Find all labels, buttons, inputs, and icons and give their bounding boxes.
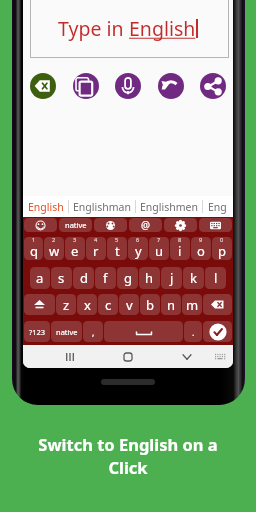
button[interactable]: q	[24, 237, 43, 260]
button[interactable]: o	[191, 237, 211, 260]
button[interactable]: x	[77, 294, 97, 315]
button[interactable]: b	[140, 294, 160, 315]
button[interactable]: g	[117, 267, 138, 289]
staticText: b	[146, 296, 154, 314]
button[interactable]: Englishman	[68, 196, 135, 217]
button[interactable]: .	[184, 321, 202, 342]
staticText: o	[197, 242, 205, 260]
button[interactable]: u	[149, 237, 169, 260]
button[interactable]: r	[86, 237, 106, 260]
staticText: s	[58, 269, 65, 287]
staticText: c	[105, 296, 112, 314]
staticText: k	[190, 269, 197, 287]
staticText: w	[49, 242, 60, 260]
button[interactable]: Keyboard layout	[199, 218, 232, 232]
button[interactable]: t	[107, 237, 127, 260]
button[interactable]: p	[212, 237, 232, 260]
button[interactable]: Emoji	[24, 218, 57, 232]
button[interactable]: j	[161, 267, 182, 289]
button[interactable]: Theme	[94, 218, 127, 232]
button[interactable]: Shift	[24, 294, 55, 315]
button[interactable]: n	[161, 294, 181, 315]
staticText: Switch to English on a Click	[30, 433, 226, 479]
staticText: native	[56, 327, 78, 337]
button[interactable]: d	[73, 267, 94, 289]
staticText: n	[167, 296, 176, 314]
button[interactable]: native	[51, 321, 82, 342]
button[interactable]: Home	[117, 346, 139, 368]
button[interactable]: i	[170, 237, 190, 260]
staticText: f	[103, 269, 108, 287]
button[interactable]: k	[183, 267, 204, 289]
staticText: g	[124, 269, 132, 287]
button[interactable]: v	[119, 294, 139, 315]
staticText: 3	[73, 237, 77, 243]
staticText: m	[186, 296, 199, 314]
staticText: t	[115, 242, 120, 260]
staticText: ?123	[29, 327, 46, 337]
staticText: q	[30, 242, 38, 260]
button[interactable]: Share	[200, 73, 226, 99]
button[interactable]: a	[30, 267, 50, 289]
button[interactable]: c	[98, 294, 118, 315]
button[interactable]: ,	[83, 321, 103, 342]
button[interactable]: Eng	[202, 196, 233, 217]
staticText: 9	[199, 237, 203, 243]
staticText: v	[126, 296, 133, 314]
button[interactable]: Settings	[164, 218, 197, 232]
staticText: .	[192, 326, 195, 338]
button[interactable]: Recents	[59, 346, 81, 368]
staticText: l	[214, 269, 218, 287]
staticText: x	[84, 296, 91, 314]
staticText: 5	[115, 237, 119, 243]
staticText: Type in	[58, 15, 129, 42]
staticText: English	[129, 15, 196, 42]
staticText: z	[63, 296, 70, 314]
staticText: h	[145, 269, 154, 287]
staticText: Englishmen	[140, 200, 198, 214]
staticText: e	[71, 242, 79, 260]
staticText: p	[218, 242, 226, 260]
staticText: 8	[178, 237, 182, 243]
staticText: Englishman	[73, 200, 131, 214]
button[interactable]: Switch keyboard	[209, 346, 231, 368]
button[interactable]: native	[59, 218, 92, 232]
button[interactable]: l	[205, 267, 226, 289]
button[interactable]: h	[139, 267, 160, 289]
button[interactable]: s	[51, 267, 72, 289]
staticText: 7	[157, 237, 161, 243]
button[interactable]: m	[182, 294, 202, 315]
button[interactable]: Back	[176, 346, 198, 368]
staticText: 0	[220, 237, 224, 243]
button[interactable]: w	[44, 237, 64, 260]
staticText: 4	[94, 237, 98, 243]
button[interactable]: Backspace	[203, 294, 232, 315]
button[interactable]: Copy	[73, 73, 99, 99]
staticText: 6	[136, 237, 140, 243]
staticText: English	[28, 200, 64, 214]
staticText: i	[178, 242, 182, 260]
button[interactable]: f	[95, 267, 116, 289]
button[interactable]: Space	[104, 321, 183, 342]
button[interactable]: Clear	[30, 73, 56, 99]
button[interactable]: y	[128, 237, 148, 260]
staticText: r	[93, 242, 99, 260]
staticText: d	[80, 269, 88, 287]
button[interactable]: Voice input	[115, 73, 141, 99]
staticText: ,	[92, 326, 95, 338]
button[interactable]: English	[23, 196, 68, 217]
staticText: Eng	[208, 200, 227, 214]
staticText: native	[65, 220, 87, 230]
button[interactable]: Undo	[158, 73, 184, 99]
button[interactable]: Englishmen	[135, 196, 202, 217]
staticText: a	[36, 269, 44, 287]
button[interactable]: z	[56, 294, 76, 315]
staticText: 1	[32, 237, 36, 243]
button[interactable]: e	[65, 237, 85, 260]
button[interactable]: @	[129, 218, 162, 232]
button[interactable]: ?123	[24, 321, 50, 342]
staticText: @	[141, 218, 150, 232]
staticText: u	[155, 242, 164, 260]
staticText: j	[170, 269, 174, 287]
button[interactable]: Enter	[203, 321, 232, 342]
